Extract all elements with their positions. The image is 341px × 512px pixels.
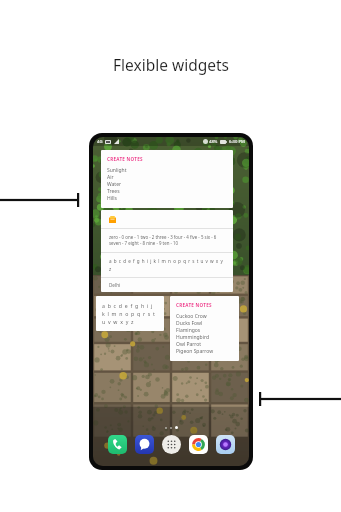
button[interactable]: zero - 0 one - 1 two - 2 three - 3 four … [101, 210, 233, 292]
button[interactable]: CREATE NOTES [101, 150, 233, 208]
button[interactable]: Phone [108, 435, 127, 454]
staticText: Flexible widgets [113, 54, 229, 75]
staticText: zero - 0 one - 1 two - 2 three - 3 four … [109, 234, 225, 247]
button[interactable]: Gallery [216, 435, 235, 454]
staticText: Sunlight [107, 167, 127, 174]
staticText: Cuckoo Crow [176, 313, 207, 320]
staticText: Trees [107, 188, 120, 195]
staticText: a b c d e f g h i j k l m n o p q r s t … [102, 302, 158, 325]
staticText: Pigeon Sparrow [176, 348, 214, 355]
staticText: CREATE NOTES [107, 156, 143, 162]
staticText: 48% [209, 139, 218, 145]
button[interactable]: CREATE NOTES [170, 296, 239, 361]
staticText: a b c d e f g h i j k l m n o p q r s t … [109, 258, 225, 272]
staticText: Water [107, 181, 122, 188]
staticText: Owl Parrot [176, 341, 202, 348]
button[interactable]: a b c d e f g h i j k l m n o p q r s t … [96, 296, 164, 331]
staticText: 6:30 PM [229, 139, 245, 145]
staticText: Hummingbird [176, 334, 210, 341]
staticText: Ducks Fowl [176, 320, 203, 327]
staticText: 4G [97, 139, 103, 145]
staticText: Delhi [109, 282, 121, 288]
button[interactable]: Chrome [189, 435, 208, 454]
staticText: Air [107, 174, 114, 181]
button[interactable]: All apps [162, 435, 181, 454]
staticText: Flamingos [176, 327, 201, 334]
staticText: CREATE NOTES [176, 302, 212, 308]
staticText: Hills [107, 195, 117, 202]
button[interactable]: Messages [135, 435, 154, 454]
